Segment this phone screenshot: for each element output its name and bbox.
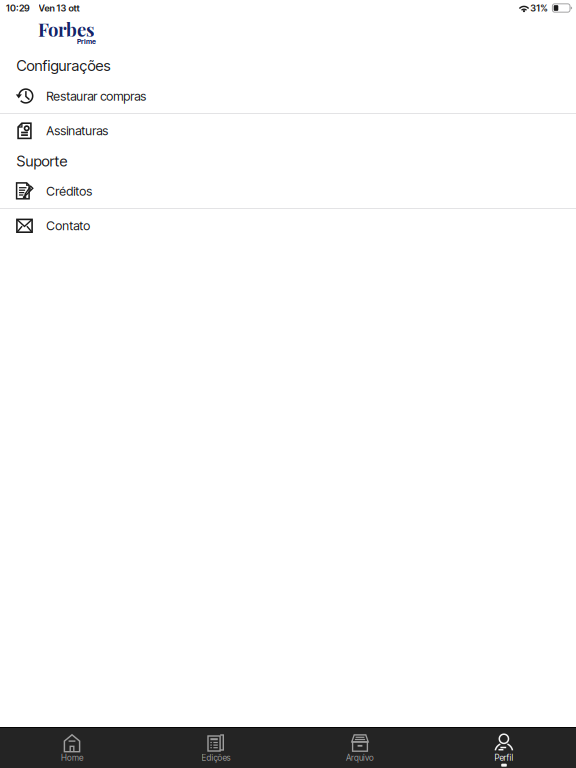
staticText: Arquivo <box>346 753 374 763</box>
staticText: Restaurar compras <box>46 89 146 104</box>
button[interactable]: Edições <box>144 727 288 768</box>
staticText: Perfil <box>494 753 513 763</box>
staticText: Suporte <box>16 152 67 170</box>
staticText: 10:29 <box>6 2 30 14</box>
staticText: Assinaturas <box>46 123 108 138</box>
staticText: Forbes <box>38 17 95 41</box>
staticText: 31% <box>530 2 548 14</box>
button[interactable]: Restaurar compras <box>0 79 576 113</box>
staticText: Prime <box>77 37 96 46</box>
button[interactable]: Créditos <box>0 174 576 208</box>
button[interactable]: Home <box>0 727 144 768</box>
button[interactable]: Perfil <box>432 727 576 768</box>
staticText: Configurações <box>16 57 110 75</box>
staticText: Créditos <box>46 184 92 199</box>
button[interactable]: Assinaturas <box>0 114 576 148</box>
staticText: Ven 13 ott <box>38 2 79 14</box>
staticText: Home <box>61 753 83 763</box>
staticText: Edições <box>201 753 230 763</box>
button[interactable]: Contato <box>0 209 576 243</box>
button[interactable]: Arquivo <box>288 727 432 768</box>
staticText: Contato <box>46 218 90 233</box>
